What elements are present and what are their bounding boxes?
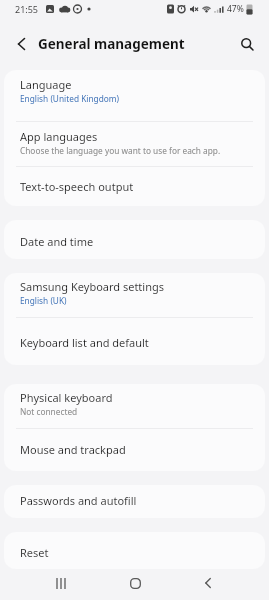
button[interactable] <box>48 570 74 596</box>
button[interactable]: App languages <box>4 122 265 166</box>
staticText: Reset <box>20 545 49 560</box>
button[interactable]: Keyboard list and default <box>4 318 265 365</box>
staticText: English (UK) <box>20 295 67 306</box>
staticText: Choose the language you want to use for … <box>20 145 221 156</box>
button[interactable] <box>235 32 259 56</box>
button[interactable]: Text-to-speech output <box>4 167 265 206</box>
button[interactable]: Date and time <box>4 220 265 259</box>
staticText: General management <box>38 35 185 53</box>
staticText: Text-to-speech output <box>20 179 134 194</box>
button[interactable]: Reset <box>4 532 265 569</box>
button[interactable] <box>122 570 148 596</box>
button[interactable]: Physical keyboard <box>4 384 265 428</box>
button[interactable] <box>195 570 221 596</box>
staticText: Language <box>20 77 72 92</box>
button[interactable]: Passwords and autofill <box>4 485 265 518</box>
staticText: 47% <box>227 3 244 15</box>
staticText: Samsung Keyboard settings <box>20 279 165 294</box>
button[interactable]: Mouse and trackpad <box>4 429 265 471</box>
staticText: English (United Kingdom) <box>20 93 120 104</box>
button[interactable]: Samsung Keyboard settings <box>4 273 265 317</box>
staticText: App languages <box>20 129 98 144</box>
staticText: Date and time <box>20 234 94 249</box>
button[interactable]: Language <box>4 70 265 121</box>
staticText: Mouse and trackpad <box>20 442 126 457</box>
staticText: Keyboard list and default <box>20 335 149 350</box>
button[interactable] <box>10 33 32 55</box>
staticText: Not connected <box>20 406 78 417</box>
staticText: 21:55 <box>15 3 39 15</box>
staticText: Passwords and autofill <box>20 493 137 508</box>
staticText: Physical keyboard <box>20 390 113 405</box>
